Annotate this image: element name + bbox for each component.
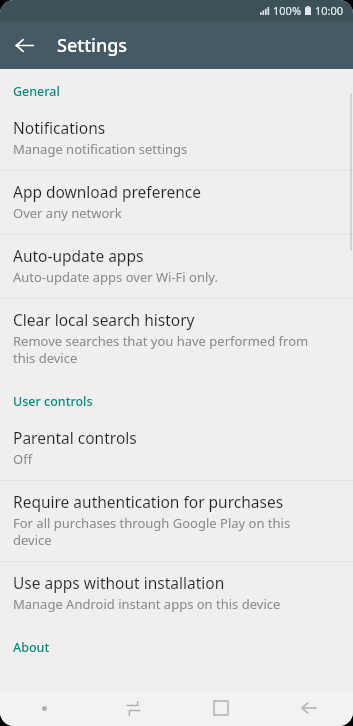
staticText: Manage notification settings <box>13 140 188 158</box>
staticText: Manage Android instant apps on this devi… <box>13 595 281 613</box>
staticText: Use apps without installation <box>13 572 225 593</box>
staticText: 100% <box>273 3 302 18</box>
button[interactable]: Parental controls <box>0 417 353 480</box>
staticText: App download preference <box>13 181 202 202</box>
staticText: Require authentication for purchases <box>13 491 284 512</box>
button[interactable]: Hide navigation bar <box>0 690 89 726</box>
staticText: Settings <box>57 33 128 58</box>
button[interactable]: Require authentication for purchases <box>0 481 353 561</box>
button[interactable]: Auto-update apps <box>0 235 353 298</box>
staticText: Auto-update apps <box>13 245 144 266</box>
button[interactable]: Back <box>265 690 353 726</box>
staticText: Auto-update apps over Wi-Fi only. <box>13 268 218 286</box>
staticText: General <box>13 83 60 100</box>
button[interactable]: Use apps without installation <box>0 562 353 625</box>
button[interactable]: Back <box>0 21 48 69</box>
staticText: Remove searches that you have performed … <box>13 332 329 367</box>
staticText: Off <box>13 450 33 468</box>
staticText: For all purchases through Google Play on… <box>13 514 329 549</box>
button[interactable]: Notifications <box>0 107 353 170</box>
button[interactable]: Recent apps <box>89 690 177 726</box>
staticText: Parental controls <box>13 427 137 448</box>
staticText: Clear local search history <box>13 309 195 330</box>
staticText: Over any network <box>13 204 122 222</box>
button[interactable]: Clear local search history <box>0 299 353 379</box>
button[interactable]: Home <box>177 690 265 726</box>
button[interactable]: App download preference <box>0 171 353 234</box>
staticText: User controls <box>13 393 93 410</box>
staticText: 10:00 <box>315 3 344 18</box>
staticText: About <box>13 639 50 656</box>
staticText: Notifications <box>13 117 106 138</box>
